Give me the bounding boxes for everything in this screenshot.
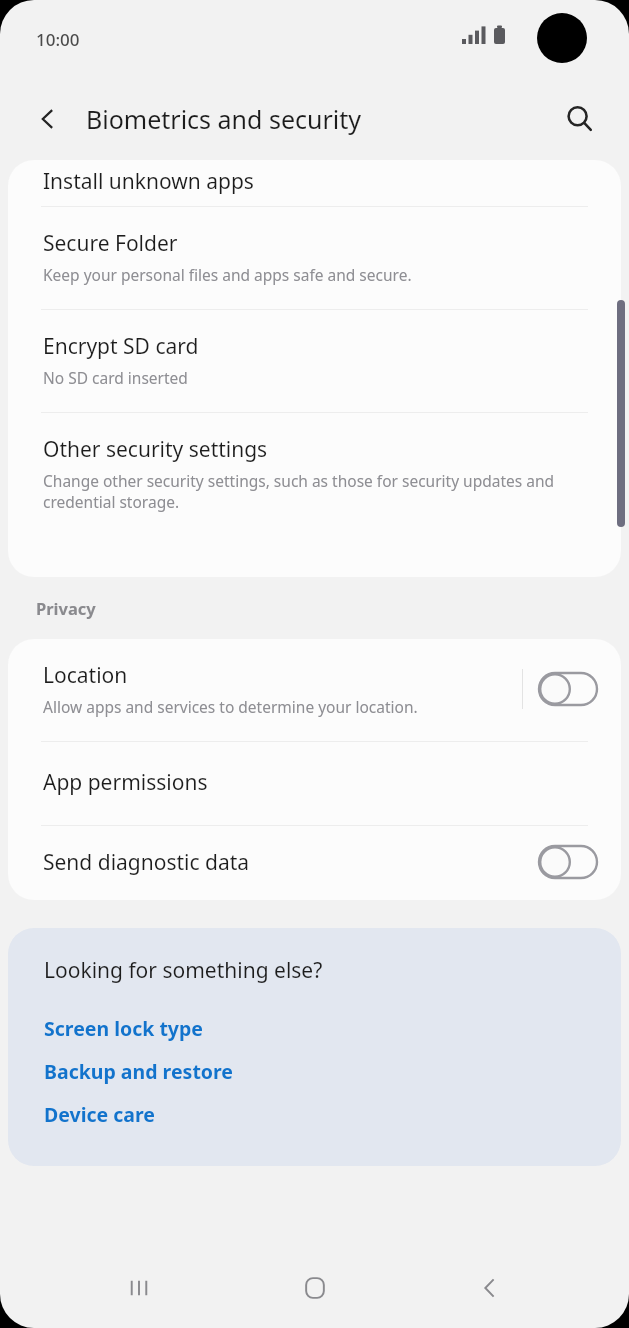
button[interactable]: Location — [8, 639, 621, 741]
staticText: Encrypt SD card — [43, 332, 199, 361]
staticText: Privacy — [36, 597, 96, 619]
button[interactable]: Send diagnostic data toggle — [539, 846, 597, 878]
staticText: Backup and restore — [44, 1058, 233, 1085]
button[interactable]: Secure Folder — [8, 207, 621, 309]
staticText: Device care — [44, 1101, 155, 1128]
button[interactable]: App permissions — [8, 742, 621, 825]
staticText: 10:00 — [36, 28, 80, 51]
button[interactable]: Location toggle — [523, 673, 601, 705]
staticText: Looking for something else? — [44, 956, 323, 985]
staticText: Keep your personal files and apps safe a… — [43, 264, 412, 285]
button[interactable]: Back — [454, 1252, 526, 1324]
staticText: App permissions — [43, 768, 208, 797]
button[interactable]: Recents — [103, 1252, 175, 1324]
button[interactable]: Send diagnostic data — [8, 826, 621, 900]
button[interactable]: Encrypt SD card — [8, 310, 621, 412]
staticText: Location — [43, 661, 128, 690]
staticText: Send diagnostic data — [43, 848, 539, 877]
button[interactable]: Search — [555, 94, 605, 144]
button[interactable]: Back — [24, 95, 72, 143]
button[interactable]: Backup and restore — [44, 1050, 591, 1093]
staticText: Change other security settings, such as … — [43, 470, 586, 513]
button[interactable]: Screen lock type — [44, 1007, 591, 1050]
staticText: No SD card inserted — [43, 367, 188, 388]
button[interactable]: Other security settings — [8, 413, 621, 537]
button[interactable]: Home — [279, 1252, 351, 1324]
staticText: Allow apps and services to determine you… — [43, 696, 418, 717]
button[interactable]: Device care — [44, 1093, 591, 1136]
staticText: Biometrics and security — [86, 102, 362, 136]
staticText: Install unknown apps — [43, 167, 254, 196]
staticText: Secure Folder — [43, 229, 178, 258]
staticText: Screen lock type — [44, 1015, 203, 1042]
staticText: Other security settings — [43, 435, 268, 464]
